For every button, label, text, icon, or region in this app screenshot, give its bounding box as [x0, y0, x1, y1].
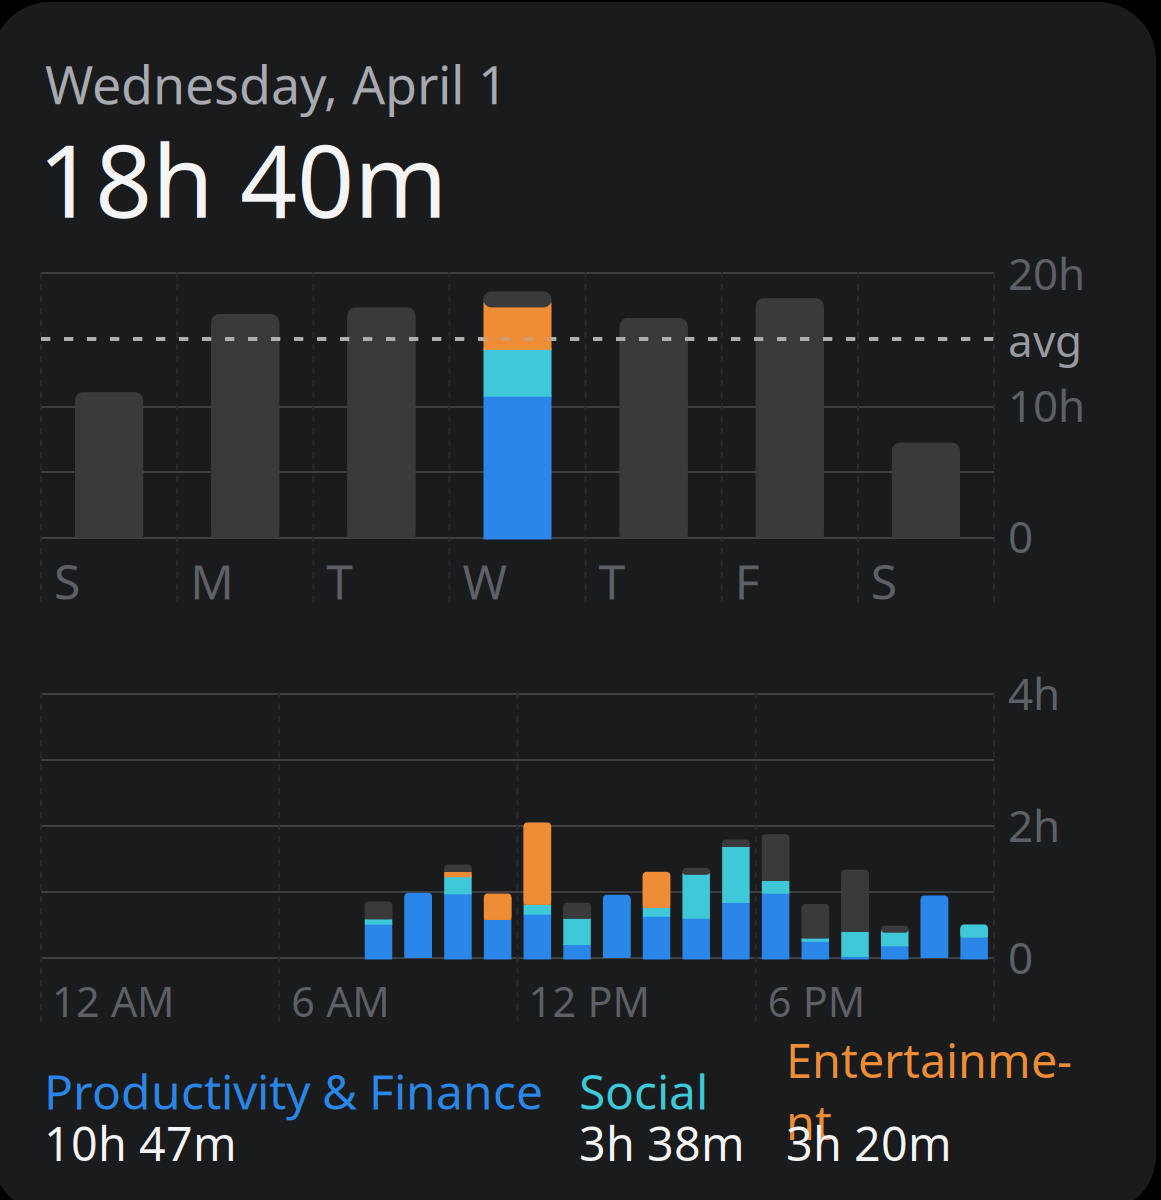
staticText: 18h 40m: [38, 113, 448, 245]
button[interactable]: Social: [579, 1065, 751, 1169]
staticText: 3h 20m: [786, 1112, 952, 1174]
staticText: Social: [579, 1059, 708, 1123]
staticText: 2h: [1008, 796, 1060, 854]
staticText: 3h 38m: [579, 1112, 745, 1174]
staticText: 4h: [1008, 664, 1060, 722]
staticText: Entertainment: [786, 1029, 1072, 1153]
staticText: 6 AM: [291, 974, 389, 1028]
staticText: 6 PM: [768, 974, 865, 1028]
staticText: T: [326, 549, 353, 613]
staticText: M: [190, 549, 234, 613]
button[interactable]: Entertainment: [786, 1065, 1100, 1169]
staticText: Wednesday, April 1: [45, 49, 508, 119]
staticText: S: [54, 549, 80, 613]
staticText: 12 AM: [52, 974, 174, 1028]
staticText: S: [871, 549, 897, 613]
button[interactable]: Productivity & Finance: [44, 1065, 544, 1169]
staticText: T: [599, 549, 626, 613]
staticText: 0: [1008, 928, 1033, 986]
staticText: 10h 47m: [44, 1112, 237, 1174]
staticText: avg: [1008, 311, 1082, 369]
staticText: F: [735, 549, 760, 613]
staticText: 12 PM: [528, 974, 649, 1028]
staticText: 0: [1008, 507, 1033, 565]
staticText: Productivity & Finance: [44, 1059, 543, 1123]
staticText: 20h: [1008, 244, 1085, 302]
staticText: W: [462, 549, 507, 613]
staticText: 10h: [1008, 376, 1085, 434]
